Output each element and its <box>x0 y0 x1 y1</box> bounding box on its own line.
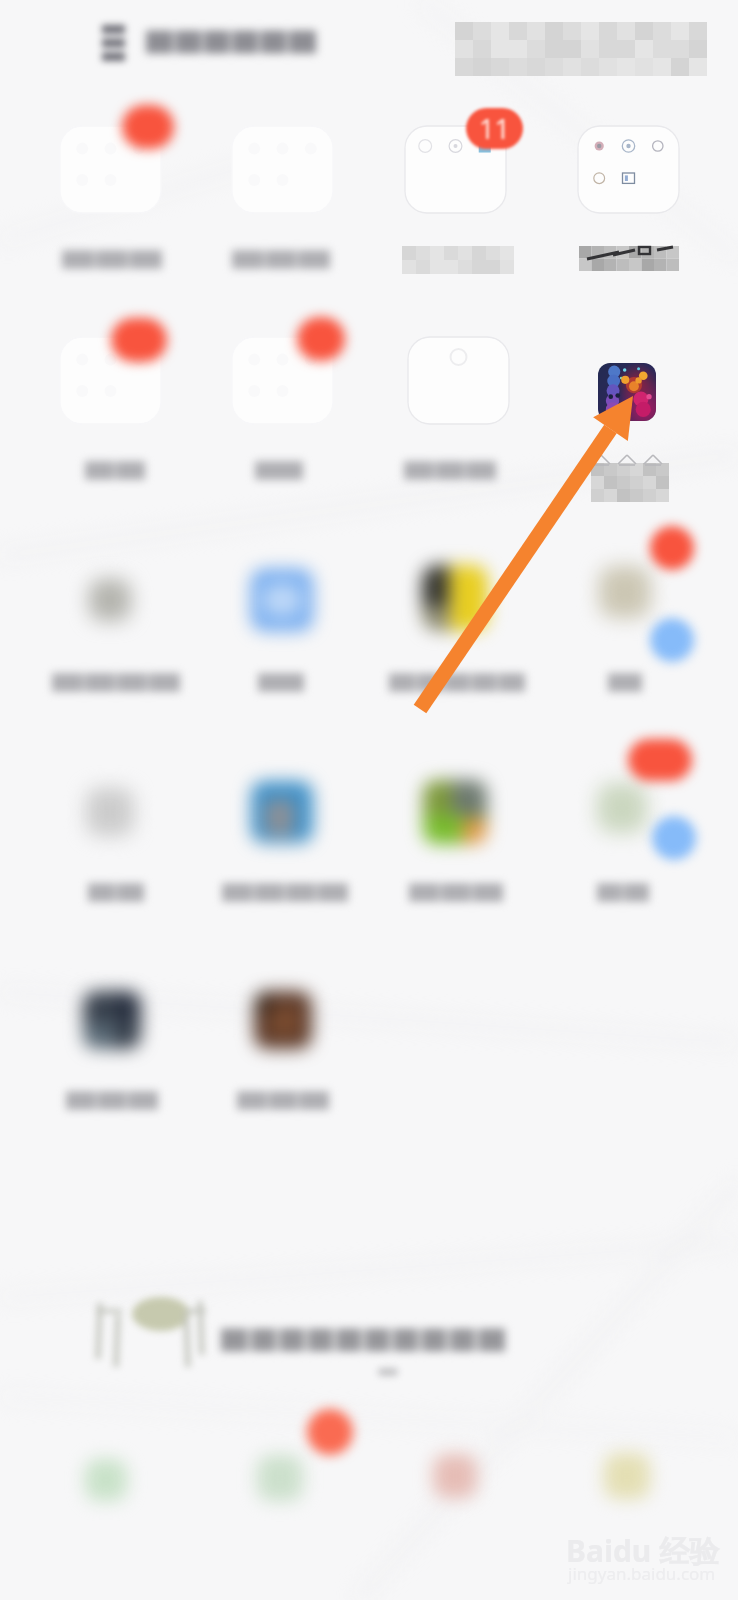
button[interactable]: App icon <box>251 569 313 631</box>
button[interactable]: App icon <box>85 1459 127 1501</box>
staticText: 11 <box>479 110 510 147</box>
button[interactable]: App folder <box>232 337 333 424</box>
button[interactable]: App icon <box>257 1455 303 1501</box>
button[interactable]: Weather widget <box>82 1275 208 1369</box>
button[interactable]: App icon <box>83 991 141 1049</box>
button[interactable]: App icon <box>254 991 312 1049</box>
button[interactable]: Monster game app <box>598 363 656 421</box>
button[interactable]: App icon <box>423 780 487 844</box>
button[interactable]: App icon <box>86 788 134 836</box>
other: Annotation arrow pointing to the game ap… <box>400 380 650 720</box>
button[interactable]: App folder <box>60 337 161 424</box>
button[interactable]: App icon <box>251 781 313 843</box>
button[interactable]: App folder <box>578 126 679 213</box>
button[interactable]: App folder <box>60 126 161 213</box>
staticText: jingyan.baidu.com <box>568 1562 716 1585</box>
button[interactable]: App folder <box>405 126 506 213</box>
button[interactable]: App icon <box>89 579 131 621</box>
staticText: Baidu 经验 <box>566 1530 720 1571</box>
other: Baidu Experience watermark <box>566 1530 720 1571</box>
button[interactable]: App icon <box>604 1453 650 1499</box>
button[interactable]: App icon <box>422 565 488 631</box>
button[interactable]: App icon <box>597 783 647 833</box>
button[interactable]: App folder <box>408 337 509 424</box>
button[interactable]: App icon <box>599 566 651 618</box>
button[interactable]: App icon <box>433 1454 477 1498</box>
